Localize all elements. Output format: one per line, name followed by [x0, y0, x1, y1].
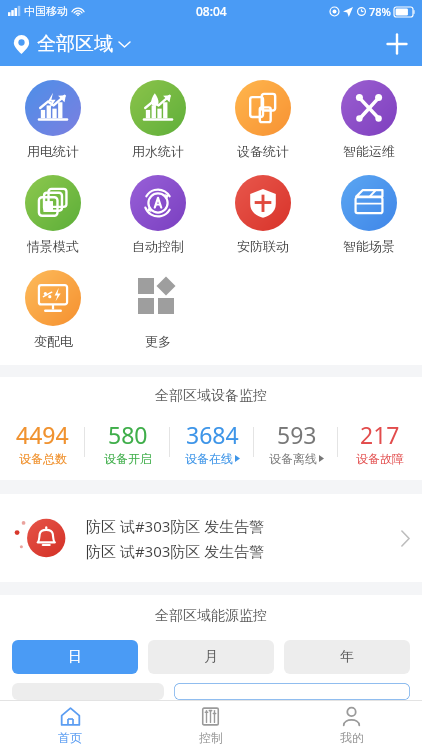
button[interactable]: 选项 [174, 683, 410, 700]
button[interactable]: 智能场景 [337, 171, 401, 258]
staticText: 首页 [58, 730, 82, 745]
button[interactable]: 更多 [126, 266, 190, 353]
button[interactable]: 3684 [185, 419, 240, 466]
staticText: 用水统计 [132, 143, 184, 159]
staticText: 防区 试#303防区 发生告警 [86, 541, 265, 561]
staticText: 智能运维 [343, 143, 395, 159]
button[interactable]: 智能运维 [337, 76, 401, 163]
staticText: 593 [277, 419, 317, 450]
button[interactable]: 4494 [16, 419, 69, 466]
button[interactable]: 月 [148, 640, 274, 674]
staticText: 日 [68, 648, 82, 666]
staticText: 我的 [340, 730, 364, 745]
button[interactable]: 580 [104, 419, 152, 466]
staticText: 月 [204, 648, 218, 666]
button[interactable]: 用水统计 [126, 76, 190, 163]
staticText: 580 [108, 419, 148, 450]
button[interactable]: 自动控制 [126, 171, 190, 258]
staticText: 情景模式 [27, 238, 79, 254]
staticText: 全部区域能源监控 [0, 607, 422, 625]
button[interactable]: 首页 [0, 701, 140, 750]
staticText: 更多 [145, 333, 171, 349]
staticText: 08:04 [196, 3, 227, 19]
staticText: 设备在线 [185, 451, 233, 466]
button[interactable]: 全部区域 [0, 26, 140, 62]
button[interactable]: 593 [269, 419, 324, 466]
staticText: 设备开启 [104, 451, 152, 466]
staticText: 中国移动 [24, 4, 68, 18]
staticText: 全部区域设备监控 [0, 387, 422, 405]
staticText: 变配电 [34, 333, 73, 349]
button[interactable]: 情景模式 [21, 171, 85, 258]
staticText: 安防联动 [237, 238, 289, 254]
staticText: 设备离线 [269, 451, 317, 466]
staticText: 用电统计 [27, 143, 79, 159]
button[interactable]: 年 [284, 640, 410, 674]
button[interactable]: 217 [356, 419, 404, 466]
button[interactable]: 安防联动 [231, 171, 295, 258]
staticText: 全部区域 [37, 32, 113, 56]
button[interactable]: 添加 [372, 25, 422, 63]
staticText: 78% [369, 4, 391, 19]
staticText: 智能场景 [343, 238, 395, 254]
button[interactable]: 变配电 [21, 266, 85, 353]
button[interactable]: 日 [12, 640, 138, 674]
staticText: 自动控制 [132, 238, 184, 254]
staticText: 年 [340, 648, 354, 666]
staticText: 防区 试#303防区 发生告警 [86, 516, 265, 536]
staticText: 设备故障 [356, 451, 404, 466]
button[interactable]: 我的 [281, 701, 422, 750]
button[interactable]: 控制 [140, 701, 281, 750]
button[interactable]: 设备统计 [231, 76, 295, 163]
button[interactable]: 防区 试#303防区 发生告警 [0, 494, 422, 582]
button[interactable]: 用电统计 [21, 76, 85, 163]
staticText: 控制 [199, 730, 223, 745]
staticText: 3684 [186, 419, 239, 450]
staticText: 4494 [16, 419, 69, 450]
staticText: 设备统计 [237, 143, 289, 159]
staticText: 217 [360, 419, 400, 450]
staticText: 设备总数 [19, 451, 67, 466]
